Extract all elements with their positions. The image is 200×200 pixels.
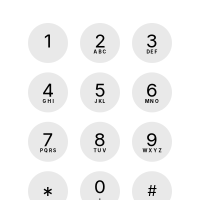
- staticText: ABC: [93, 49, 106, 55]
- staticText: *: [42, 182, 53, 200]
- staticText: JKL: [94, 98, 105, 104]
- staticText: 2: [94, 29, 105, 52]
- button[interactable]: 6 MNO: [132, 72, 172, 112]
- staticText: DEF: [146, 49, 157, 55]
- button[interactable]: 3 DEF: [132, 23, 172, 63]
- staticText: 6: [146, 79, 158, 101]
- staticText: GHI: [42, 98, 53, 104]
- button[interactable]: 0 +: [80, 171, 120, 200]
- staticText: #: [147, 182, 156, 199]
- button[interactable]: Star: [28, 171, 68, 200]
- staticText: WXYZ: [142, 148, 161, 153]
- staticText: 5: [94, 79, 105, 101]
- button[interactable]: 9 WXYZ: [132, 122, 172, 162]
- button[interactable]: 7 PQRS: [28, 122, 68, 162]
- staticText: PQRS: [40, 148, 56, 153]
- button[interactable]: 4 GHI: [28, 72, 68, 112]
- button[interactable]: 8 TUV: [80, 122, 120, 162]
- staticText: 8: [94, 128, 106, 151]
- staticText: +: [97, 194, 103, 200]
- button[interactable]: 1: [28, 23, 68, 63]
- button[interactable]: Pound: [132, 171, 172, 200]
- button[interactable]: 2 ABC: [80, 23, 120, 63]
- button[interactable]: 5 JKL: [80, 72, 120, 112]
- staticText: MNO: [145, 98, 159, 104]
- staticText: 7: [42, 128, 53, 151]
- staticText: 9: [146, 128, 158, 151]
- staticText: 0: [94, 175, 106, 198]
- staticText: 1: [44, 29, 52, 52]
- staticText: 3: [146, 29, 158, 52]
- staticText: 4: [42, 79, 54, 101]
- staticText: TUV: [93, 148, 106, 153]
